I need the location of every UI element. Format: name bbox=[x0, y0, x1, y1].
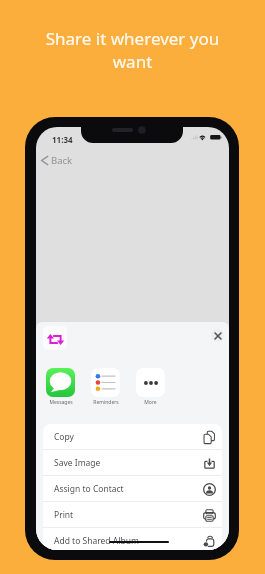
staticText: Print bbox=[54, 509, 74, 521]
staticText: Add to Shared Album bbox=[54, 535, 139, 547]
button[interactable]: Reminders bbox=[91, 368, 120, 406]
button[interactable]: Print bbox=[43, 502, 222, 528]
staticText: Reminders bbox=[93, 399, 119, 406]
staticText: Messages bbox=[49, 399, 73, 406]
staticText: Save Image bbox=[54, 457, 101, 469]
staticText: 11:34 bbox=[52, 134, 73, 145]
staticText: Share it wherever you want bbox=[30, 27, 235, 73]
staticText: Assign to Contact bbox=[54, 483, 124, 495]
button[interactable]: Messages bbox=[46, 368, 75, 406]
button[interactable]: Back bbox=[39, 151, 75, 170]
staticText: Copy bbox=[54, 431, 74, 443]
button[interactable]: Copy bbox=[43, 424, 222, 450]
button[interactable]: Add to Shared Album bbox=[43, 528, 222, 550]
staticText: More bbox=[144, 399, 157, 406]
button[interactable]: Close bbox=[211, 329, 224, 342]
staticText: Back bbox=[51, 154, 73, 167]
button[interactable]: Save Image bbox=[43, 450, 222, 476]
button[interactable]: More bbox=[136, 368, 165, 406]
button[interactable]: Assign to Contact bbox=[43, 476, 222, 502]
